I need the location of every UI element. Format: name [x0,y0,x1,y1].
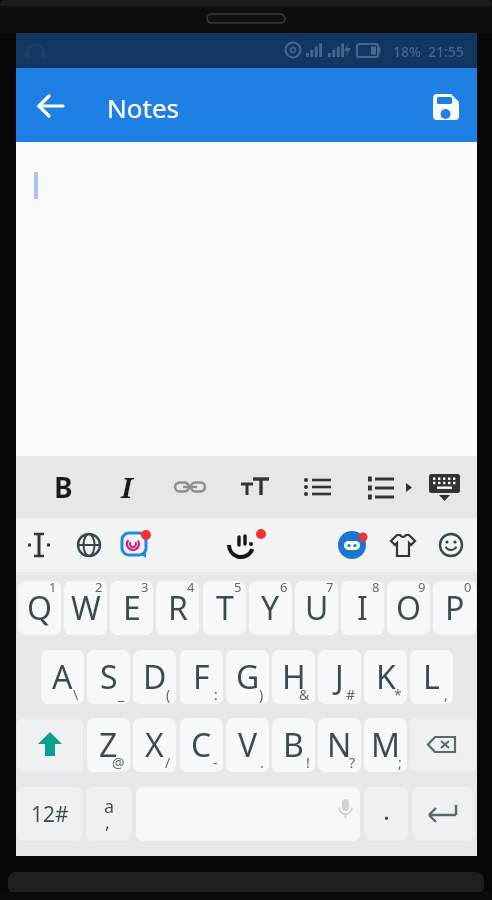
button[interactable]: . [364,787,408,841]
staticText: I [357,586,368,630]
button[interactable]: R [156,581,199,635]
staticText: X [145,723,164,767]
staticText: 4 [187,581,195,596]
staticText: T [216,586,234,630]
button[interactable]: X [133,718,176,772]
button[interactable]: a [86,787,132,841]
button[interactable]: M [364,718,407,772]
staticText: P [445,586,465,630]
button[interactable]: F [180,650,223,704]
button[interactable] [421,85,461,125]
button[interactable]: W [64,581,107,635]
staticText: _ [118,685,125,704]
staticText: A [52,655,73,699]
button[interactable]: E [110,581,153,635]
staticText: F [193,655,210,699]
staticText: * [394,685,402,704]
button[interactable]: L [410,650,453,704]
staticText: R [168,586,188,630]
staticText: D [143,655,167,699]
staticText: I [121,468,133,506]
button[interactable] [410,718,476,772]
button[interactable]: U [295,581,338,635]
button[interactable] [368,467,430,507]
button[interactable] [424,467,466,511]
button[interactable]: 12# [17,787,83,841]
staticText: O [396,586,421,630]
staticText: . [383,792,390,827]
staticText: - [213,753,218,772]
staticText: ) [259,685,264,704]
button[interactable] [136,787,360,841]
button[interactable] [225,527,267,563]
staticText: # [346,685,356,704]
button[interactable]: S [87,650,130,704]
staticText: / [165,753,171,772]
staticText: : [214,685,218,704]
button[interactable]: Q [18,581,61,635]
button[interactable]: D [133,650,176,704]
staticText: 3 [141,581,149,596]
staticText: Notes [107,90,179,125]
button[interactable]: B [272,718,315,772]
button[interactable] [17,718,83,772]
staticText: S [100,655,118,699]
button[interactable]: I [107,467,147,507]
button[interactable]: K [364,650,407,704]
staticText: 1 [49,581,57,596]
button[interactable] [32,86,72,126]
button[interactable] [336,529,372,561]
button[interactable] [387,529,419,561]
staticText: G [236,655,260,699]
staticText: ; [398,753,402,772]
button[interactable] [73,529,105,561]
button[interactable]: O [387,581,430,635]
staticText: N [327,723,352,767]
button[interactable]: Z [87,718,130,772]
button[interactable] [298,467,338,507]
staticText: \ [73,685,79,704]
staticText: 9 [418,581,426,596]
staticText: , [105,810,110,835]
button[interactable] [435,529,467,561]
button[interactable]: N [318,718,361,772]
staticText: J [335,655,344,699]
staticText: 21:55 [428,42,464,61]
button[interactable]: V [226,718,269,772]
button[interactable]: I [341,581,384,635]
button[interactable]: C [180,718,223,772]
button[interactable]: P [433,581,476,635]
staticText: @ [112,753,125,772]
button[interactable]: A [41,650,84,704]
button[interactable]: Y [249,581,292,635]
button[interactable]: T [203,581,246,635]
staticText: 2 [95,581,103,596]
staticText: L [423,655,440,699]
staticText: 8 [372,581,380,596]
staticText: W [71,586,101,630]
staticText: K [376,655,396,699]
button[interactable] [412,787,474,841]
staticText: 6 [280,581,288,596]
staticText: H [282,655,306,699]
button[interactable] [237,467,277,507]
staticText: ? [349,753,356,772]
staticText: 18% [393,42,421,61]
staticText: ( [166,685,171,704]
staticText: , [444,685,448,704]
button[interactable]: J [318,650,361,704]
staticText: Y [261,586,280,630]
button[interactable]: H [272,650,315,704]
staticText: 0 [464,581,472,596]
button[interactable]: G [226,650,269,704]
staticText: 12# [31,800,69,829]
button[interactable] [170,467,210,507]
button[interactable] [23,529,55,561]
button[interactable] [118,527,154,563]
staticText: E [123,586,141,630]
button[interactable]: B [43,467,83,507]
staticText: 5 [234,581,242,596]
staticText: a [104,794,115,819]
staticText: & [299,685,310,704]
